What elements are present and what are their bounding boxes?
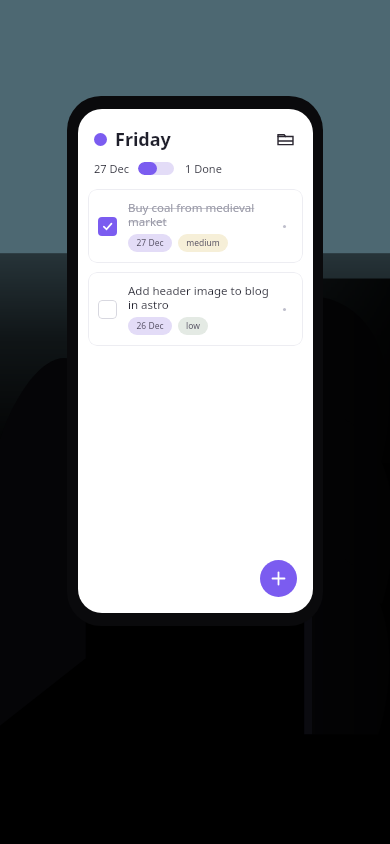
- staticText: 27 Dec: [136, 237, 164, 249]
- button[interactable]: More options: [275, 217, 293, 235]
- staticText: 27 Dec: [94, 161, 129, 176]
- button[interactable]: Completed: [88, 189, 303, 263]
- button[interactable]: Add task: [260, 560, 297, 597]
- button[interactable]: Mark complete: [98, 300, 117, 319]
- staticText: Add header image to blog in astro: [128, 283, 269, 312]
- button[interactable]: Mark complete: [88, 272, 303, 346]
- staticText: medium: [186, 237, 220, 249]
- staticText: low: [186, 320, 200, 332]
- staticText: Buy coal from medieval market: [128, 200, 255, 229]
- button[interactable]: Completed: [98, 217, 117, 236]
- staticText: 26 Dec: [136, 320, 164, 332]
- button[interactable]: Folders: [271, 125, 299, 153]
- button[interactable]: More options: [275, 300, 293, 318]
- button[interactable]: Progress: [138, 162, 174, 175]
- staticText: Friday: [115, 127, 171, 152]
- staticText: 1 Done: [185, 161, 222, 176]
